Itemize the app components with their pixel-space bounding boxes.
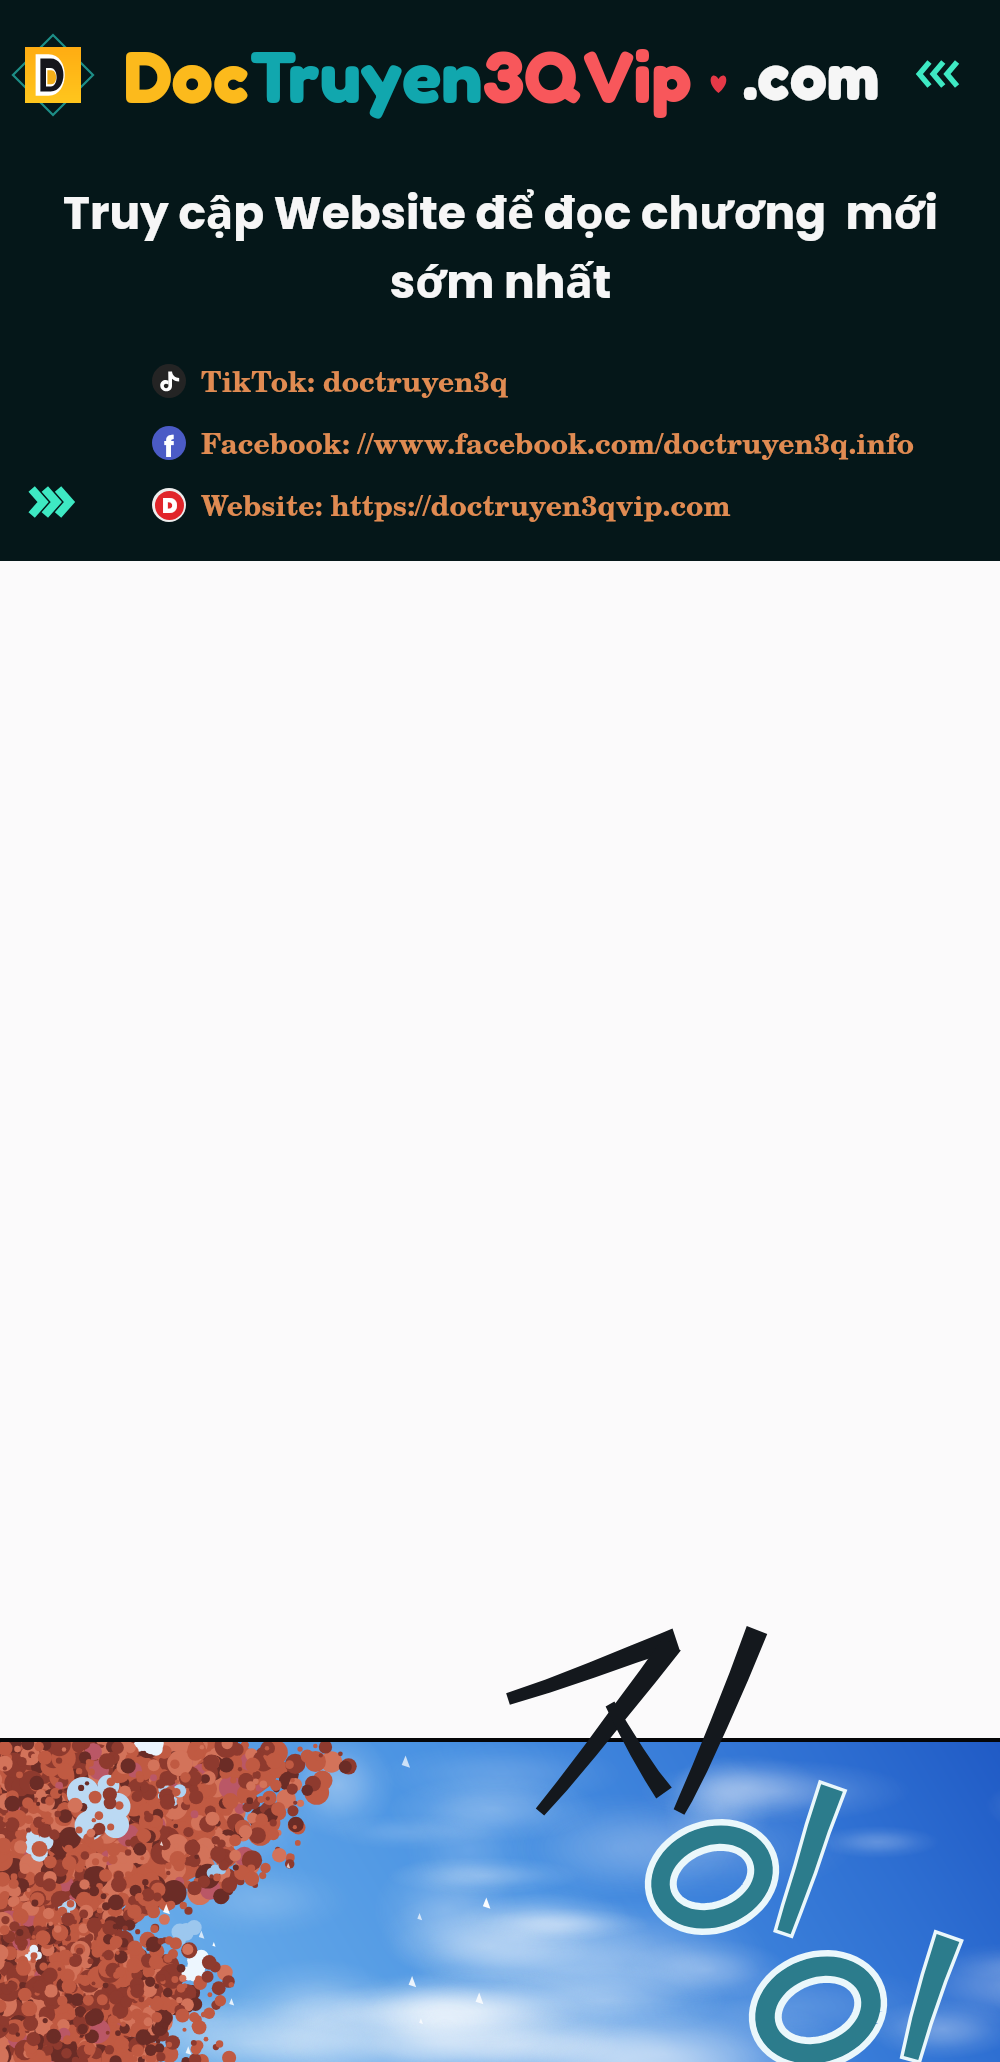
staticText: Truy cập Website để đọc chương mới sớm n… <box>63 180 938 314</box>
staticText: Website: https://doctruyen3qvip.com <box>201 483 731 527</box>
staticText: 3Q <box>483 31 582 119</box>
button[interactable]: Next chapter <box>11 470 91 534</box>
button[interactable]: f <box>0 418 1000 468</box>
staticText: Truyen <box>250 31 483 119</box>
staticText: D <box>162 491 178 520</box>
button[interactable]: D <box>0 480 1000 530</box>
staticText: Vip <box>582 31 692 119</box>
staticText: f <box>164 428 175 460</box>
button[interactable]: Back <box>905 48 965 100</box>
staticText: .com <box>743 35 880 115</box>
staticText: Facebook: //www.facebook.com/doctruyen3q… <box>201 421 915 465</box>
staticText: Doc <box>124 31 250 119</box>
staticText: TikTok: doctruyen3q <box>201 359 509 403</box>
button[interactable]: TikTok: doctruyen3q <box>0 356 1000 406</box>
